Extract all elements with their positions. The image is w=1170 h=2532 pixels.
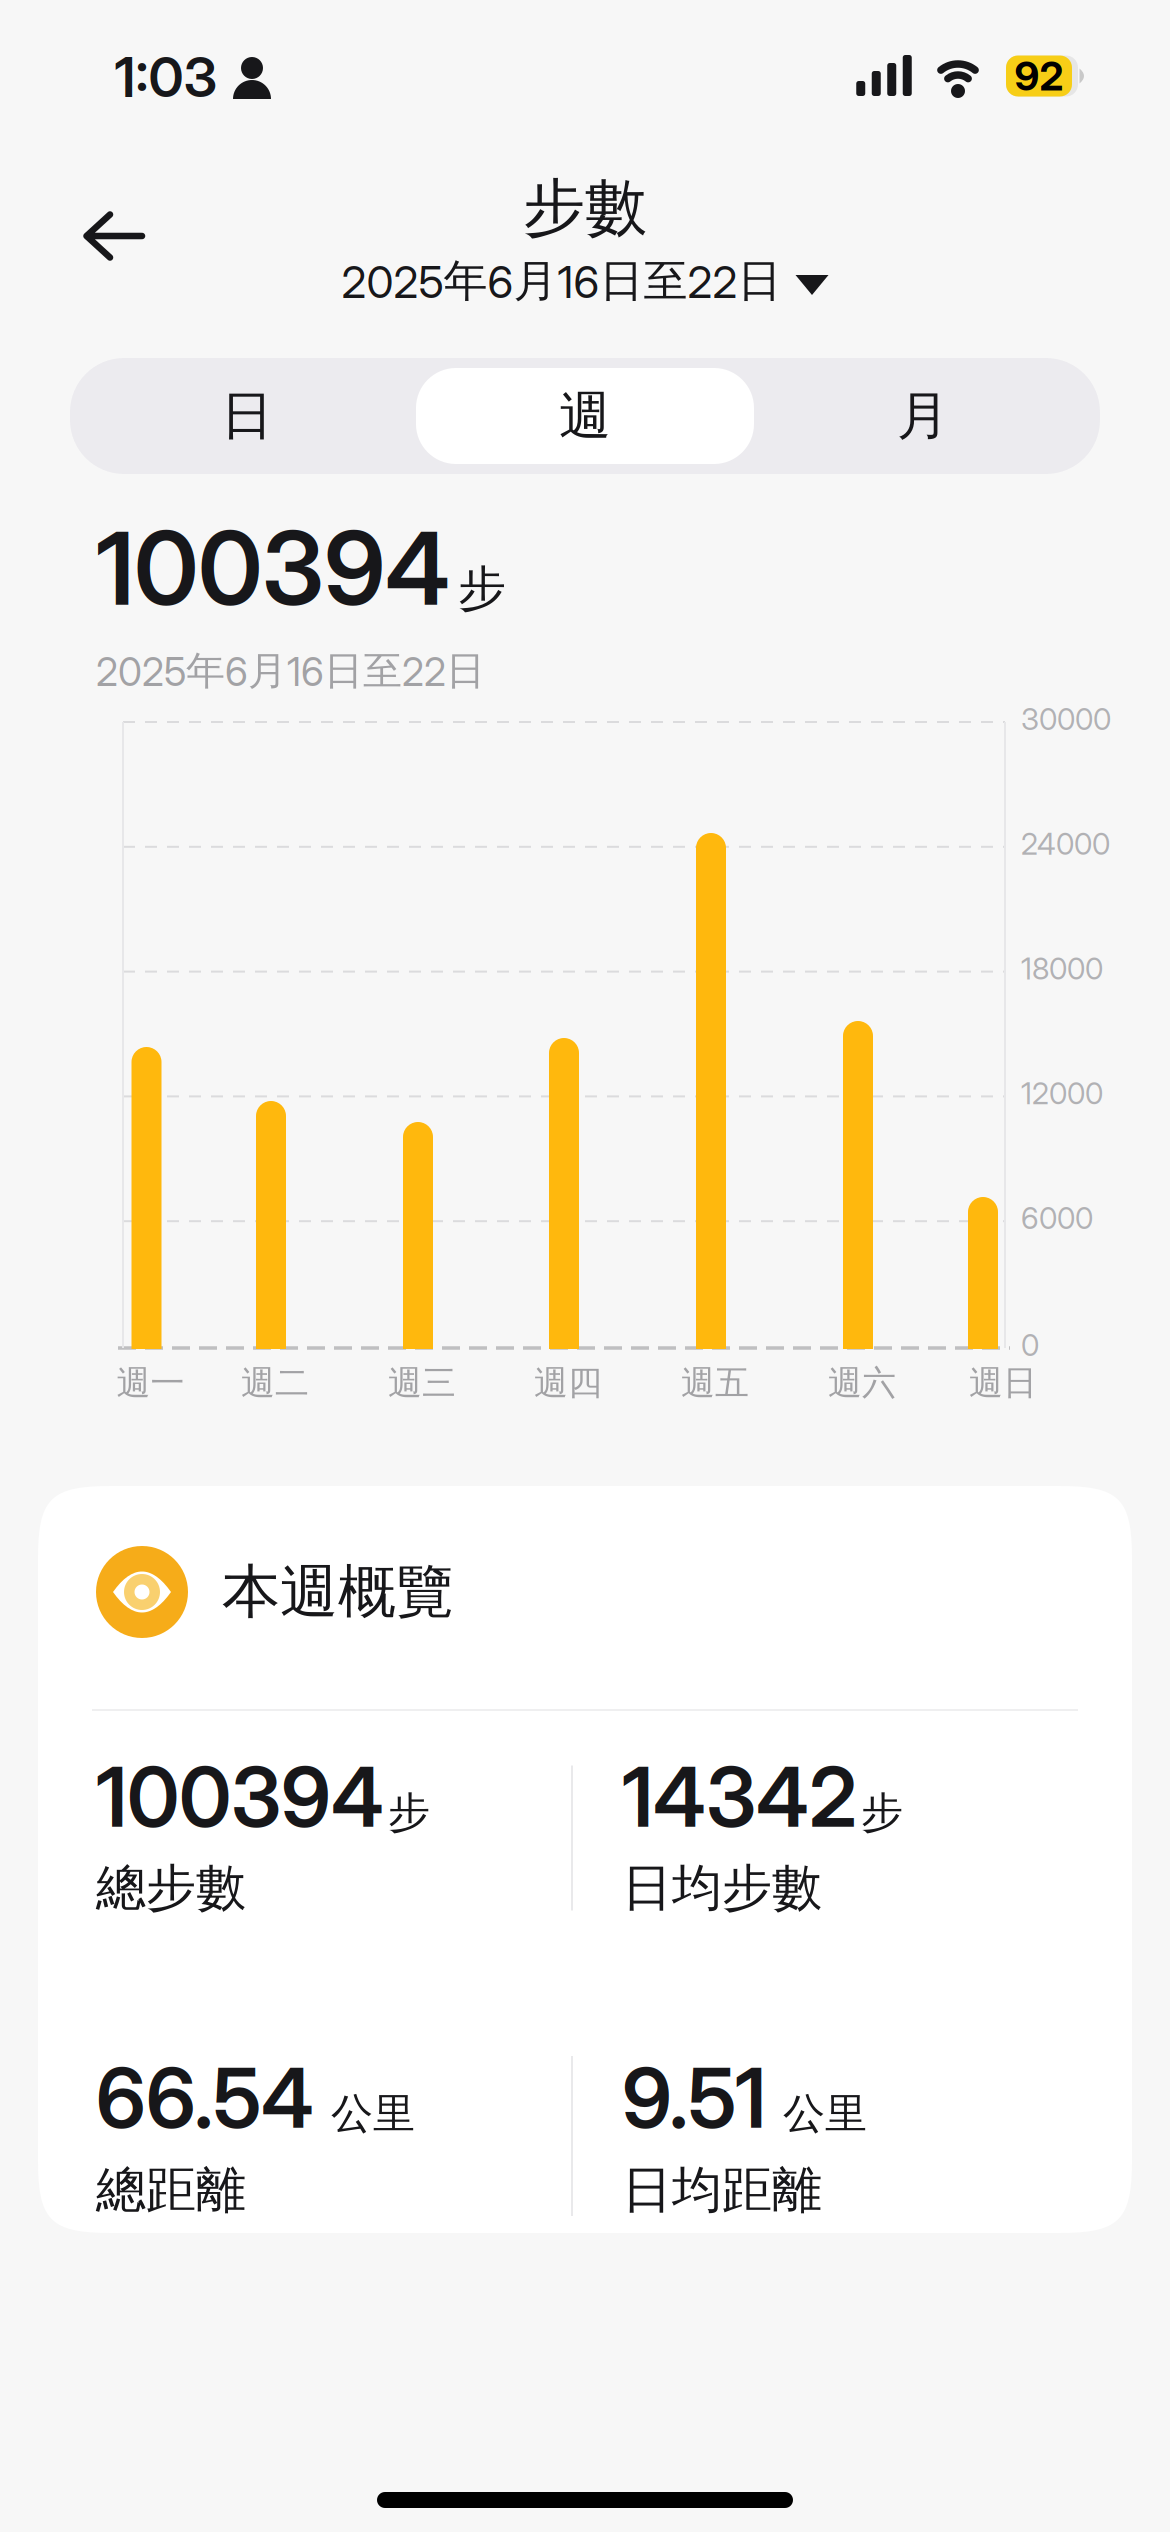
staticText: 步 bbox=[388, 1786, 430, 1839]
staticText: 總步數 bbox=[96, 1856, 246, 1919]
button[interactable]: 月 bbox=[754, 368, 1092, 464]
staticText: 1:03 bbox=[114, 44, 217, 110]
staticText: 92 bbox=[1014, 52, 1063, 100]
staticText: 週日 bbox=[969, 1362, 1037, 1404]
staticText: 週五 bbox=[681, 1362, 749, 1404]
staticText: 步數 bbox=[523, 169, 647, 247]
staticText: 12000 bbox=[1021, 1075, 1103, 1112]
staticText: 0 bbox=[1021, 1327, 1039, 1363]
staticText: 24000 bbox=[1021, 826, 1110, 862]
staticText: 100394 bbox=[96, 507, 450, 629]
staticText: 66.54 bbox=[96, 2048, 314, 2148]
staticText: 2025年6月16日至22日 bbox=[341, 253, 781, 309]
staticText: 週一 bbox=[116, 1362, 184, 1404]
staticText: 日均步數 bbox=[622, 1856, 822, 1919]
staticText: 18000 bbox=[1021, 950, 1103, 987]
staticText: 總距離 bbox=[96, 2158, 246, 2221]
staticText: 週六 bbox=[828, 1362, 896, 1404]
staticText: 步 bbox=[458, 558, 506, 619]
button[interactable]: 週 bbox=[416, 368, 754, 464]
staticText: 100394 bbox=[96, 1747, 384, 1847]
staticText: 週四 bbox=[534, 1362, 602, 1404]
staticText: 本週概覽 bbox=[222, 1555, 454, 1629]
staticText: 月 bbox=[897, 383, 949, 449]
staticText: 週二 bbox=[241, 1362, 309, 1404]
button[interactable]: 日 bbox=[78, 368, 416, 464]
button[interactable]: 2025年6月16日至22日 bbox=[341, 253, 828, 309]
button[interactable]: 返回 bbox=[83, 212, 145, 259]
staticText: 2025年6月16日至22日 bbox=[96, 646, 485, 695]
staticText: 9.51 bbox=[622, 2048, 766, 2148]
staticText: 14342 bbox=[622, 1747, 857, 1847]
staticText: 日 bbox=[221, 383, 273, 449]
staticText: 公里 bbox=[318, 2087, 415, 2140]
staticText: 步 bbox=[861, 1786, 903, 1839]
staticText: 週三 bbox=[388, 1362, 456, 1404]
staticText: 公里 bbox=[770, 2087, 867, 2140]
staticText: 30000 bbox=[1021, 701, 1111, 737]
staticText: 日均距離 bbox=[622, 2158, 822, 2221]
staticText: 週 bbox=[559, 383, 611, 449]
staticText: 6000 bbox=[1021, 1200, 1093, 1236]
